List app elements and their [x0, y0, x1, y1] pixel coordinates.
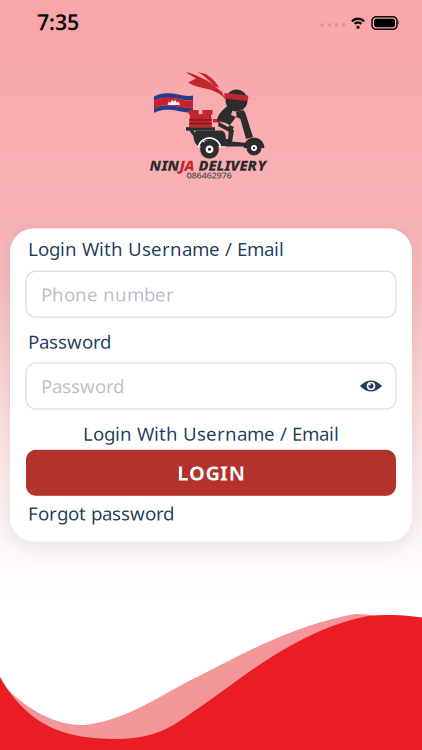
staticText: 7:35	[37, 8, 79, 36]
staticText: LOGIN	[177, 459, 245, 486]
button[interactable]: Phone number	[26, 271, 396, 317]
staticText: Password	[28, 329, 111, 354]
staticText: Forgot password	[28, 501, 174, 526]
button[interactable]: Login With Username / Email	[26, 421, 396, 446]
staticText: Login With Username / Email	[28, 236, 284, 261]
staticText: DELIVERY	[194, 155, 266, 175]
staticText: Password	[41, 374, 124, 398]
button[interactable]: Show password	[359, 378, 396, 394]
staticText: JA	[179, 155, 194, 175]
button[interactable]: Password	[26, 363, 396, 409]
staticText: Login With Username / Email	[83, 421, 339, 446]
staticText: 086462976	[186, 169, 231, 181]
staticText: NIN	[149, 155, 179, 175]
button[interactable]: LOGIN	[26, 450, 396, 496]
staticText: Phone number	[41, 282, 174, 307]
button[interactable]: Forgot password	[28, 501, 174, 526]
